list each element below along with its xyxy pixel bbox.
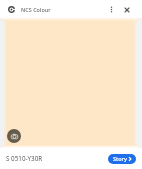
button[interactable]: More options [106, 4, 117, 15]
button[interactable]: Close [121, 4, 132, 15]
button[interactable]: Story [108, 154, 136, 164]
staticText: NCS Colour [21, 6, 51, 13]
staticText: Story [113, 155, 127, 163]
staticText: S 0510-Y30R [6, 154, 43, 163]
button[interactable]: NCS logo [7, 5, 15, 13]
button[interactable]: Pick colour with camera [7, 129, 21, 143]
